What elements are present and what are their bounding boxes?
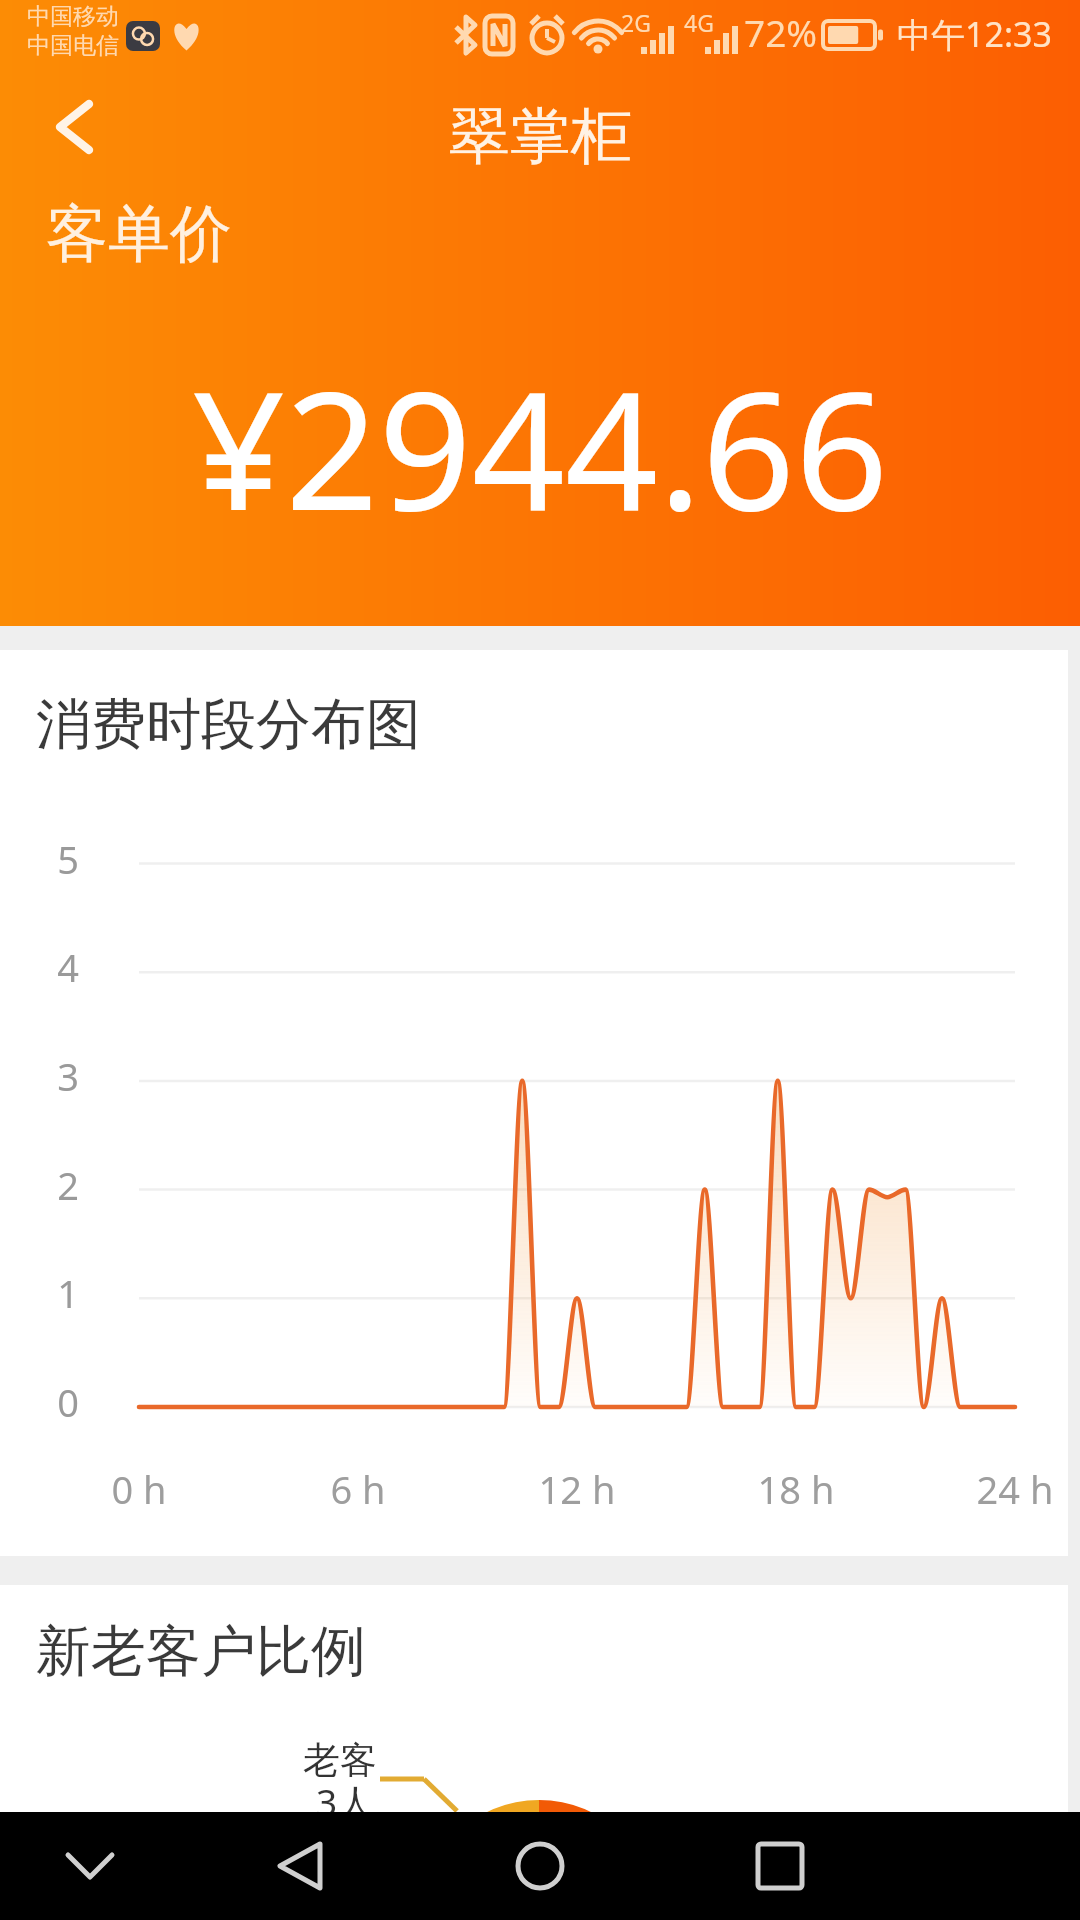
- staticText: ¥2944.66: [192, 336, 889, 558]
- staticText: 新老客户比例: [36, 1617, 366, 1686]
- staticText: 4G: [684, 7, 714, 38]
- button[interactable]: Hide keyboard: [35, 1812, 145, 1920]
- staticText: 客单价: [46, 195, 232, 273]
- staticText: 1: [38, 1267, 98, 1319]
- staticText: 0 h: [59, 1463, 219, 1515]
- staticText: 消费时段分布图: [36, 690, 421, 759]
- staticText: 18 h: [716, 1463, 876, 1515]
- staticText: 4: [38, 941, 98, 993]
- staticText: 24 h: [935, 1463, 1080, 1515]
- staticText: 2G: [621, 7, 651, 38]
- staticText: 3人: [316, 1776, 375, 1827]
- button[interactable]: Home: [485, 1812, 595, 1920]
- button[interactable]: Back: [26, 79, 122, 175]
- staticText: 老客: [303, 1737, 377, 1784]
- staticText: 中午12:33: [897, 11, 1052, 57]
- staticText: 中国电信: [27, 31, 119, 60]
- staticText: 2: [38, 1159, 98, 1211]
- staticText: 6 h: [278, 1463, 438, 1515]
- button[interactable]: Recents: [725, 1812, 835, 1920]
- staticText: 12 h: [497, 1463, 657, 1515]
- staticText: 3: [38, 1050, 98, 1102]
- staticText: 0: [38, 1376, 98, 1428]
- staticText: 72%: [744, 7, 818, 57]
- staticText: 翠掌柜: [449, 98, 632, 175]
- staticText: 中国移动: [27, 2, 119, 31]
- button[interactable]: Back: [245, 1812, 355, 1920]
- staticText: 5: [38, 833, 98, 885]
